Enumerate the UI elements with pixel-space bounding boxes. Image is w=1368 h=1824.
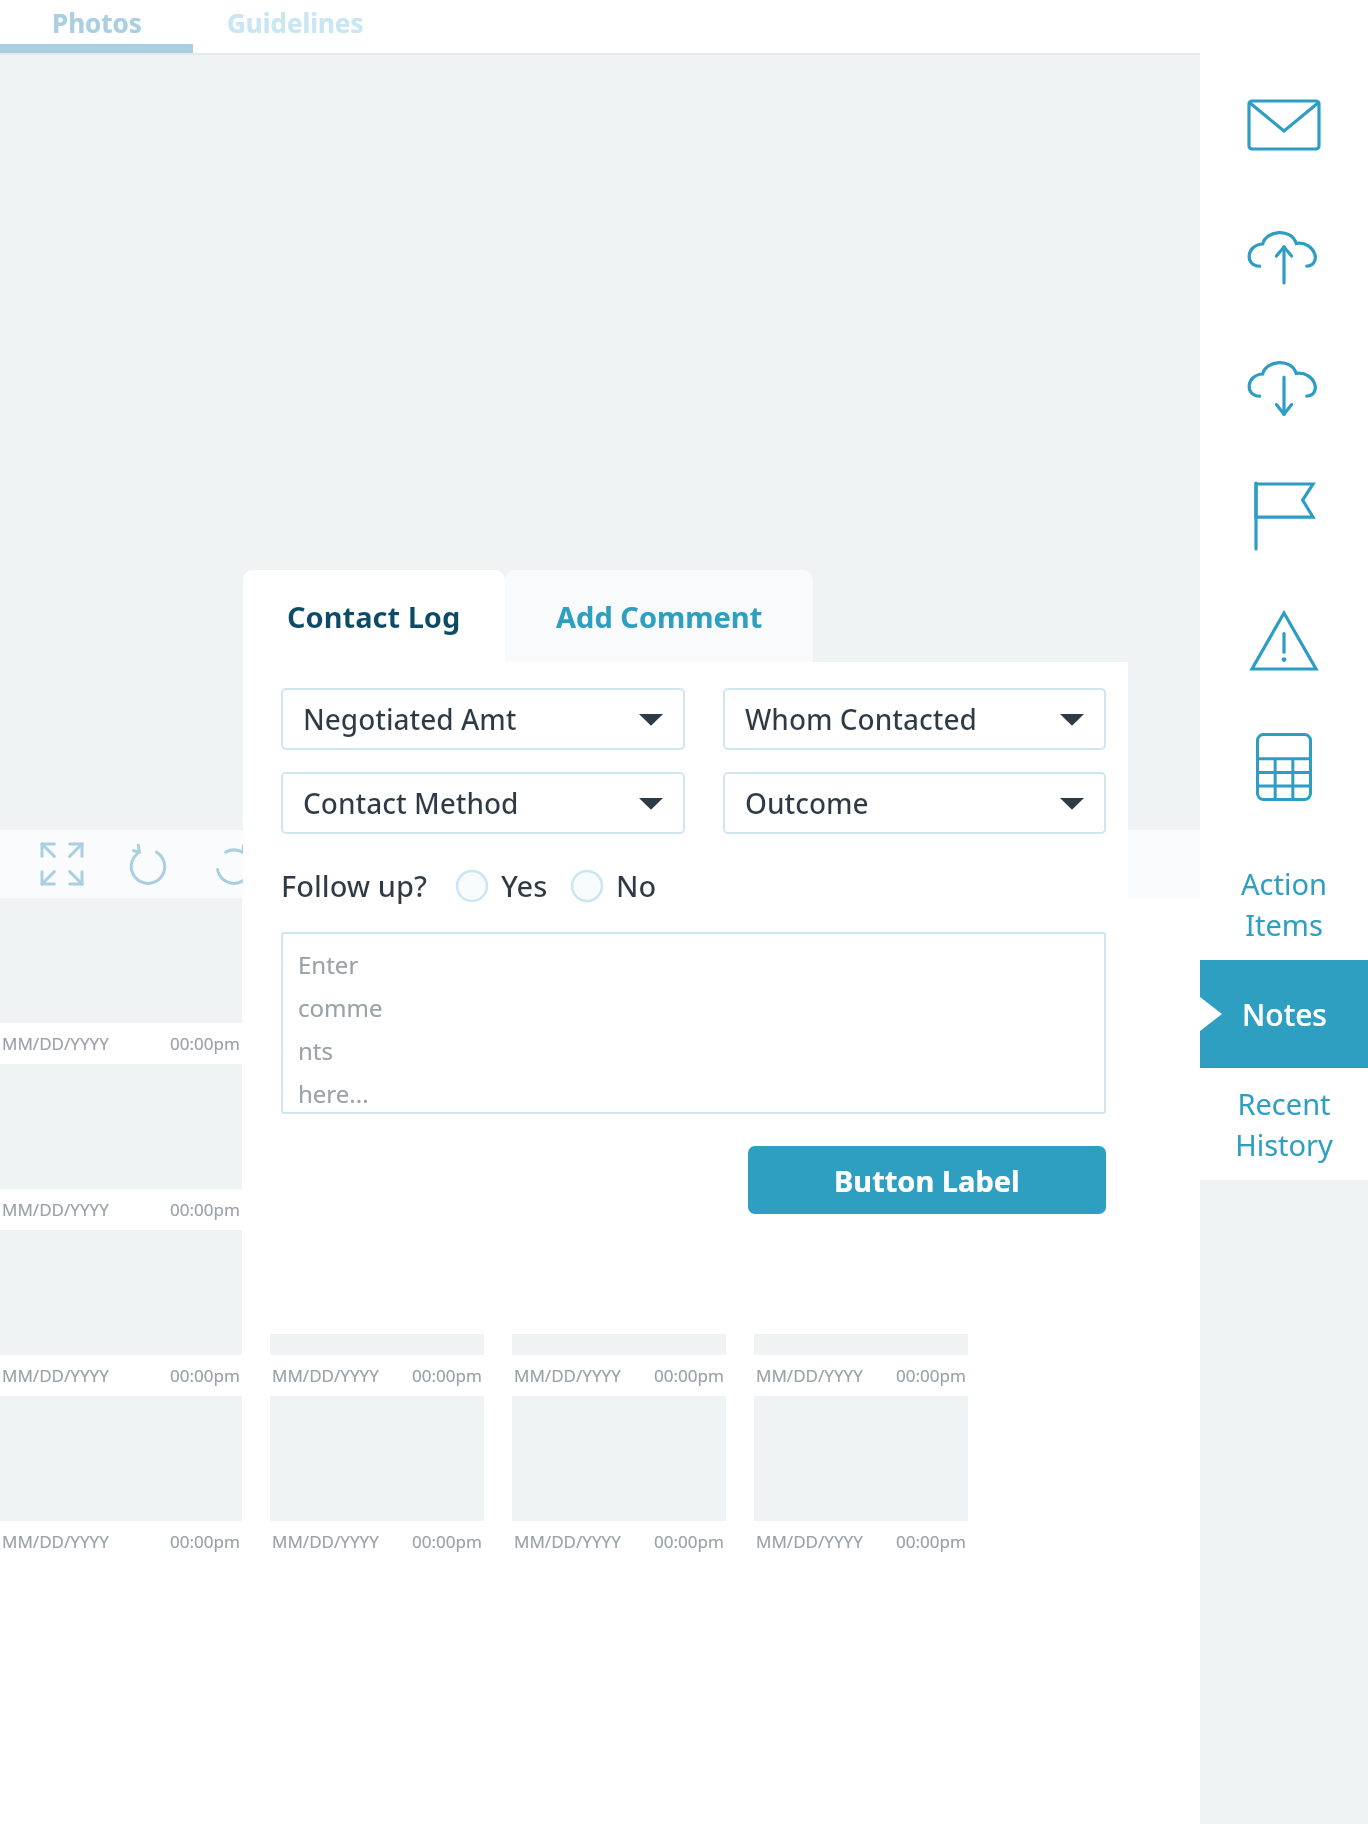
button[interactable]: Yes xyxy=(455,866,548,905)
staticText: Contact Method xyxy=(303,784,519,822)
button[interactable]: Download xyxy=(1241,346,1327,432)
button[interactable]: MM/DD/YYYY xyxy=(270,898,484,1064)
staticText: Contact Log xyxy=(287,597,461,636)
button[interactable]: No xyxy=(570,866,657,905)
staticText: 00:00pm xyxy=(896,1530,966,1553)
staticText: Yes xyxy=(501,866,548,905)
staticText: 00:00pm xyxy=(412,1530,482,1553)
button[interactable]: Recent History xyxy=(1200,1068,1368,1180)
button[interactable]: Flag xyxy=(1241,472,1327,558)
staticText: 00:00pm xyxy=(170,1198,240,1221)
staticText: Notes xyxy=(1242,994,1327,1035)
staticText: MM/DD/YYYY xyxy=(272,1530,379,1553)
staticText: Negotiated Amt xyxy=(303,700,517,738)
staticText: Outcome xyxy=(745,784,869,822)
staticText: MM/DD/YYYY xyxy=(756,1530,863,1553)
staticText: comme xyxy=(298,991,383,1024)
button[interactable]: Alert xyxy=(1241,598,1327,684)
staticText: 00:00pm xyxy=(896,1364,966,1387)
staticText: MM/DD/YYYY xyxy=(2,1530,109,1553)
staticText: 00:00pm xyxy=(654,1530,724,1553)
button[interactable]: Action Items xyxy=(1200,848,1368,960)
button[interactable]: Upload xyxy=(1241,216,1327,302)
button[interactable]: Whom Contacted xyxy=(723,688,1106,750)
staticText: 00:00pm xyxy=(412,1364,482,1387)
staticText: 00:00pm xyxy=(654,1364,724,1387)
staticText: Button Label xyxy=(834,1161,1020,1200)
button[interactable]: MM/DD/YYYY xyxy=(754,1230,968,1396)
button[interactable]: MM/DD/YYYY xyxy=(512,1230,726,1396)
button[interactable]: MM/DD/YYYY xyxy=(0,898,242,1064)
button[interactable]: Outcome xyxy=(723,772,1106,834)
button[interactable]: MM/DD/YYYY xyxy=(754,898,968,1064)
staticText: Recent History xyxy=(1235,1084,1333,1165)
button[interactable]: Button Label xyxy=(748,1146,1106,1214)
button[interactable]: Contact Log xyxy=(243,570,505,662)
button[interactable]: MM/DD/YYYY xyxy=(0,1064,242,1230)
staticText: MM/DD/YYYY xyxy=(2,1198,109,1221)
staticText: Photos xyxy=(52,5,142,40)
staticText: MM/DD/YYYY xyxy=(756,1198,863,1221)
staticText: Action Items xyxy=(1241,864,1327,945)
staticText: MM/DD/YYYY xyxy=(272,1364,379,1387)
button[interactable]: MM/DD/YYYY xyxy=(754,1396,968,1562)
staticText: No xyxy=(616,866,657,905)
staticText: MM/DD/YYYY xyxy=(514,1364,621,1387)
staticText: 00:00pm xyxy=(170,1530,240,1553)
staticText: 00:00pm xyxy=(896,1198,966,1221)
staticText: Whom Contacted xyxy=(745,700,977,738)
button[interactable]: MM/DD/YYYY xyxy=(270,1230,484,1396)
button[interactable]: Email xyxy=(1241,82,1327,168)
button[interactable]: MM/DD/YYYY xyxy=(754,1064,968,1230)
button[interactable]: MM/DD/YYYY xyxy=(512,1064,726,1230)
button[interactable]: Guidelines xyxy=(193,0,398,44)
staticText: nts xyxy=(298,1034,333,1067)
staticText: MM/DD/YYYY xyxy=(2,1364,109,1387)
staticText: MM/DD/YYYY xyxy=(272,1032,379,1055)
button[interactable]: Contact Method xyxy=(281,772,685,834)
staticText: MM/DD/YYYY xyxy=(514,1530,621,1553)
button[interactable]: Negotiated Amt xyxy=(281,688,685,750)
button[interactable]: Fullscreen xyxy=(36,838,88,890)
button[interactable]: MM/DD/YYYY xyxy=(0,1396,242,1562)
staticText: here... xyxy=(298,1077,369,1104)
staticText: MM/DD/YYYY xyxy=(756,1364,863,1387)
staticText: Guidelines xyxy=(227,5,364,40)
button[interactable]: Rotate left xyxy=(122,838,174,890)
staticText: Add Comment xyxy=(556,597,763,636)
button[interactable]: Photos xyxy=(0,0,193,44)
button[interactable]: MM/DD/YYYY xyxy=(0,1230,242,1396)
button[interactable]: MM/DD/YYYY xyxy=(270,1396,484,1562)
button[interactable]: MM/DD/YYYY xyxy=(512,1396,726,1562)
button[interactable]: Notes xyxy=(1200,960,1368,1068)
button[interactable]: Add Comment xyxy=(505,570,813,662)
staticText: Follow up? xyxy=(281,866,427,905)
button[interactable]: Calculator xyxy=(1241,724,1327,810)
button[interactable]: MM/DD/YYYY xyxy=(270,1064,484,1230)
staticText: 00:00pm xyxy=(170,1364,240,1387)
button[interactable]: MM/DD/YYYY xyxy=(512,898,726,1064)
button[interactable]: Rotate right xyxy=(208,838,260,890)
staticText: MM/DD/YYYY xyxy=(2,1032,109,1055)
staticText: Enter xyxy=(298,948,359,981)
staticText: 00:00pm xyxy=(170,1032,240,1055)
button[interactable]: Enter xyxy=(281,932,1106,1114)
